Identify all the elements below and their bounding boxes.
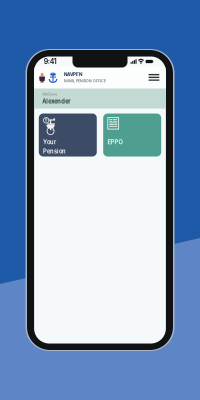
staticText: Pension	[43, 148, 66, 155]
staticText: 9:41	[44, 57, 57, 66]
staticText: Alexender	[42, 98, 70, 105]
button[interactable]: Your	[39, 113, 97, 156]
staticText: Your	[43, 139, 56, 145]
staticText: EPPO	[107, 139, 122, 145]
button[interactable]: EPPO	[103, 113, 161, 156]
button[interactable]: Menu	[146, 71, 162, 84]
staticText: WelCome	[42, 92, 57, 96]
staticText: NAVAL PENSION OFFICE	[64, 79, 106, 83]
staticText: NAVPEN	[64, 72, 82, 77]
